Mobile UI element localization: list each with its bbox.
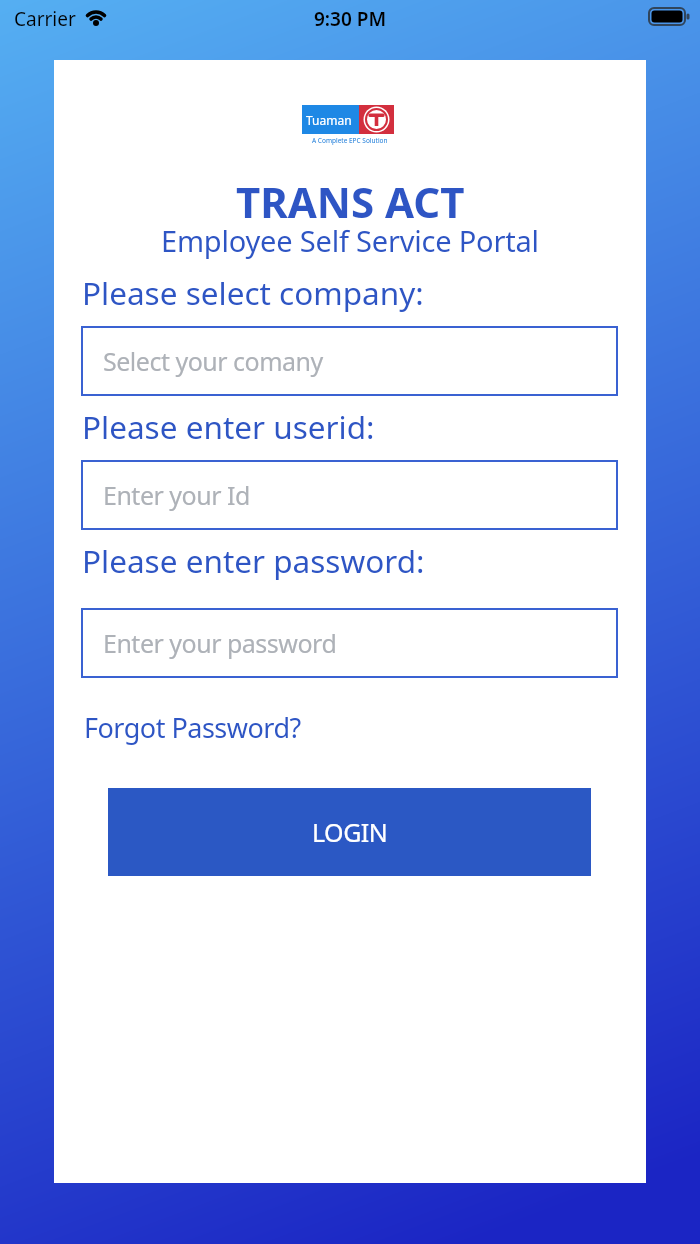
button[interactable]: LOGIN <box>108 788 591 876</box>
staticText: Enter your Id <box>103 478 250 512</box>
staticText: Please enter password: <box>82 539 425 582</box>
staticText: Please select company: <box>82 271 424 314</box>
staticText: A Complete EPC Solution <box>312 136 388 145</box>
staticText: Enter your password <box>103 626 337 660</box>
staticText: Select your comany <box>103 344 323 378</box>
button[interactable]: Forgot Password? <box>84 709 301 746</box>
staticText: Employee Self Service Portal <box>161 221 539 260</box>
button[interactable]: Enter your password <box>81 608 618 678</box>
button[interactable]: Select your comany <box>81 326 618 396</box>
staticText: Carrier <box>14 6 76 32</box>
staticText: Please enter userid: <box>82 405 375 448</box>
button[interactable]: Enter your Id <box>81 460 618 530</box>
staticText: TRANS ACT <box>236 173 465 230</box>
staticText: LOGIN <box>312 815 388 849</box>
staticText: Tuaman <box>306 112 352 128</box>
staticText: 9:30 PM <box>314 6 387 32</box>
